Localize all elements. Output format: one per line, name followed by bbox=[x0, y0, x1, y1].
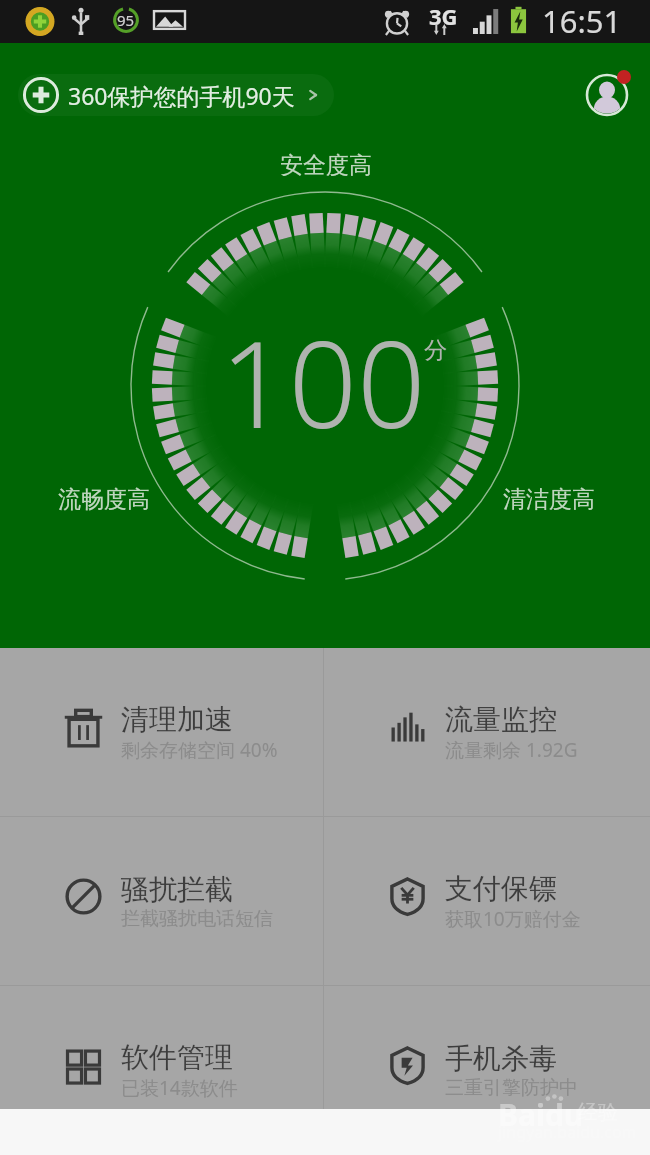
staticText: 已装14款软件 bbox=[121, 1075, 238, 1101]
staticText: 经验 bbox=[578, 1100, 618, 1125]
staticText: 3G bbox=[429, 1, 458, 31]
button[interactable]: 360保护您的手机90天 bbox=[18, 74, 334, 116]
staticText: 清理加速 bbox=[121, 702, 233, 737]
staticText: 100 bbox=[220, 300, 426, 463]
button[interactable]: Account bbox=[580, 69, 636, 125]
button[interactable]: 流量监控 bbox=[324, 648, 650, 816]
staticText: 骚扰拦截 bbox=[121, 872, 233, 907]
staticText: 16:51 bbox=[542, 0, 622, 42]
staticText: 软件管理 bbox=[121, 1040, 233, 1075]
staticText: 获取10万赔付金 bbox=[445, 906, 581, 932]
button[interactable]: 手机杀毒 bbox=[324, 986, 650, 1109]
button[interactable]: 清理加速 bbox=[0, 648, 323, 816]
staticText: 清洁度高 bbox=[503, 485, 595, 514]
staticText: Baidu bbox=[498, 1094, 584, 1135]
staticText: 安全度高 bbox=[280, 151, 372, 180]
staticText: 手机杀毒 bbox=[445, 1041, 557, 1076]
staticText: 拦截骚扰电话短信 bbox=[121, 907, 273, 931]
staticText: 流量监控 bbox=[445, 702, 557, 737]
staticText: 剩余存储空间 40% bbox=[121, 737, 278, 763]
staticText: 三重引擎防护中 bbox=[445, 1076, 578, 1100]
staticText: 流量剩余 1.92G bbox=[445, 737, 578, 763]
staticText: 支付保镖 bbox=[445, 871, 557, 906]
staticText: 95 bbox=[117, 10, 135, 30]
staticText: 360保护您的手机90天 bbox=[68, 80, 295, 111]
button[interactable]: 软件管理 bbox=[0, 986, 323, 1109]
button[interactable]: 支付保镖 bbox=[324, 817, 650, 985]
staticText: 分 bbox=[424, 336, 447, 365]
button[interactable]: 骚扰拦截 bbox=[0, 817, 323, 985]
staticText: 流畅度高 bbox=[58, 485, 150, 514]
